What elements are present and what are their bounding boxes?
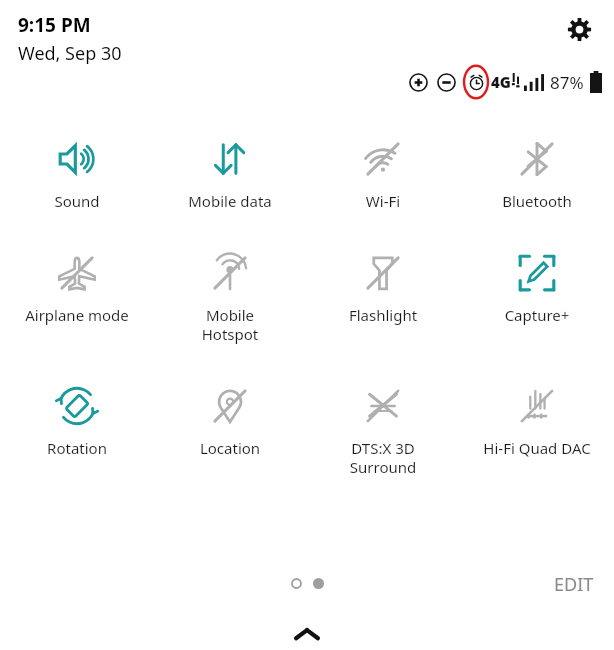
button[interactable]: Flashlight: [317, 246, 449, 325]
button[interactable]: Rotation: [11, 379, 143, 458]
staticText: Airplane mode: [11, 305, 143, 325]
staticText: 87%: [550, 71, 584, 94]
button[interactable]: Hi-Fi Quad DAC: [471, 379, 603, 458]
button[interactable]: Mobile Hotspot: [164, 246, 296, 344]
button[interactable]: Wi-Fi: [317, 132, 449, 211]
staticText: Mobile data: [164, 191, 296, 211]
button[interactable]: Sound: [11, 132, 143, 211]
staticText: Wed, Sep 30: [18, 41, 122, 66]
staticText: Flashlight: [317, 305, 449, 325]
staticText: Rotation: [11, 438, 143, 458]
staticText: EDIT: [554, 572, 594, 597]
staticText: DTS:X 3D Surround: [317, 438, 449, 477]
staticText: Wi-Fi: [317, 191, 449, 211]
button[interactable]: EDIT: [548, 568, 600, 601]
button[interactable]: Collapse: [287, 622, 327, 646]
button[interactable]: Mobile data: [164, 132, 296, 211]
staticText: Sound: [11, 191, 143, 211]
staticText: 4G: [491, 72, 511, 92]
button[interactable]: Capture+: [471, 246, 603, 325]
staticText: Bluetooth: [471, 191, 603, 211]
staticText: 9:15 PM: [18, 12, 91, 38]
button[interactable]: Location: [164, 379, 296, 458]
staticText: Hi-Fi Quad DAC: [471, 438, 603, 458]
button[interactable]: DTS:X 3D Surround: [317, 379, 449, 477]
staticText: Capture+: [471, 305, 603, 325]
button[interactable]: Settings: [558, 8, 600, 50]
button[interactable]: Airplane mode: [11, 246, 143, 325]
staticText: Mobile Hotspot: [164, 305, 296, 344]
button[interactable]: Bluetooth: [471, 132, 603, 211]
staticText: Location: [164, 438, 296, 458]
